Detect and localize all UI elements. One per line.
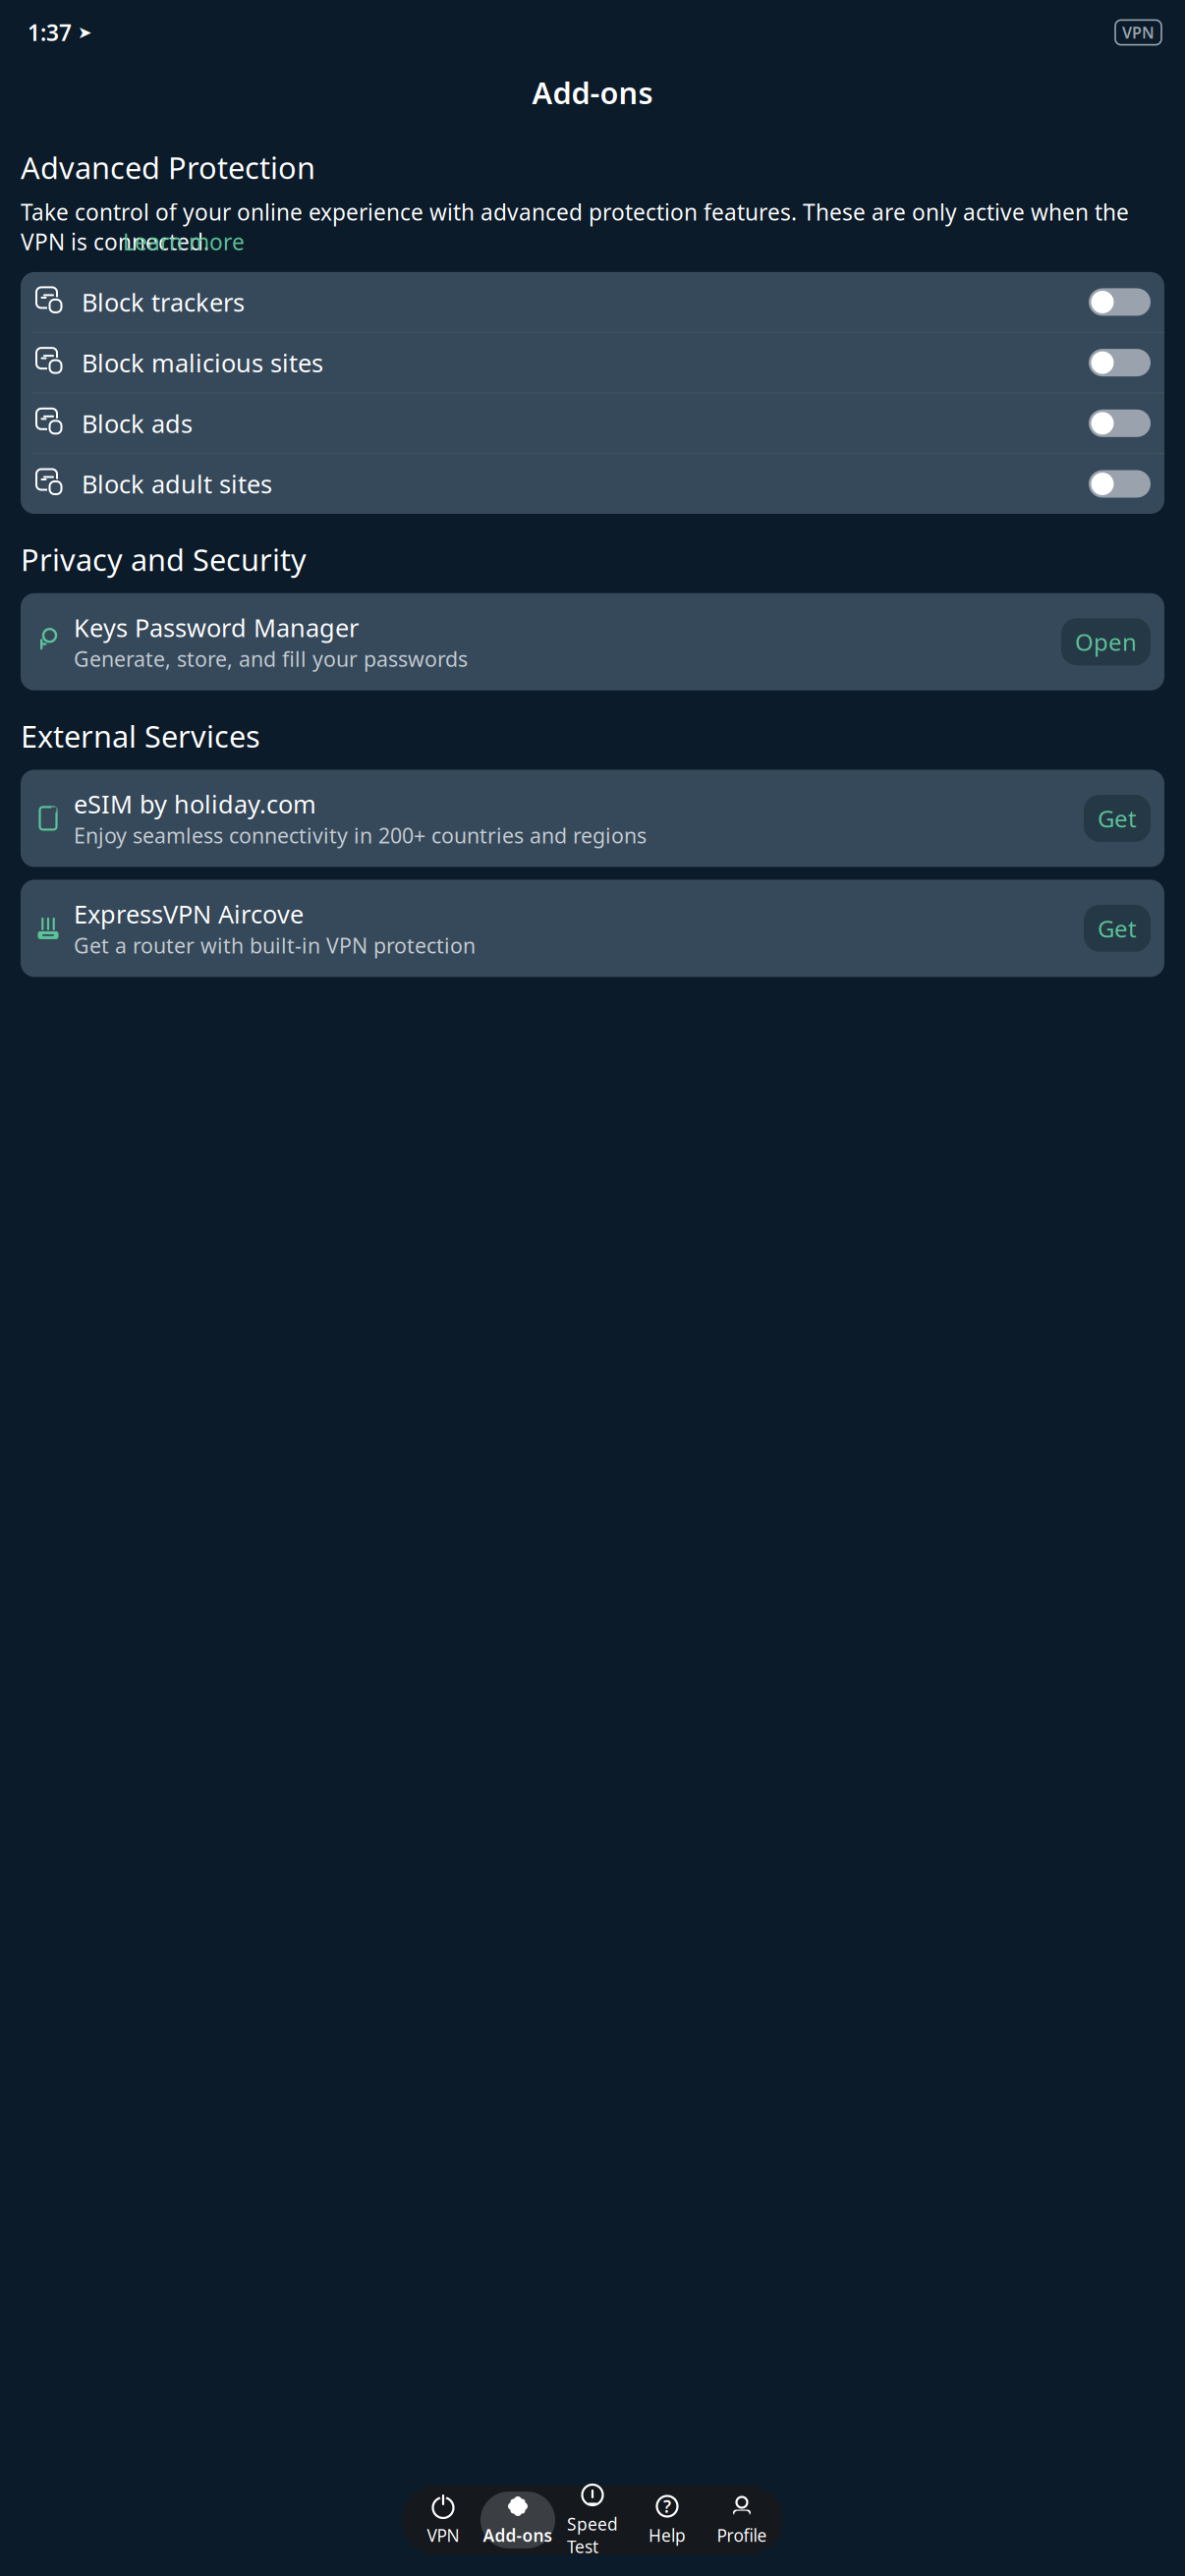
staticText: Speed Test: [567, 2513, 618, 2558]
button[interactable]: Block ads: [21, 393, 1164, 453]
button[interactable]: ExpressVPN Aircove: [21, 880, 1164, 977]
staticText: Generate, store, and fill your passwords: [74, 645, 468, 673]
staticText: Open: [1075, 626, 1137, 657]
staticText: Get: [1098, 913, 1137, 944]
staticText: Privacy and Security: [21, 539, 307, 579]
staticText: Block malicious sites: [82, 346, 323, 379]
staticText: VPN: [427, 2524, 459, 2547]
staticText: Learn more: [123, 227, 245, 256]
button[interactable]: Keys Password Manager: [21, 593, 1164, 690]
staticText: eSIM by holiday.com: [74, 787, 316, 820]
staticText: Block trackers: [82, 286, 245, 319]
staticText: Block adult sites: [82, 467, 272, 500]
button[interactable]: ?: [630, 2492, 705, 2548]
staticText: Help: [649, 2524, 686, 2547]
staticText: Get: [1098, 803, 1137, 834]
staticText: VPN: [1122, 22, 1155, 43]
staticText: Take control of your online experience w…: [21, 197, 1129, 256]
staticText: Keys Password Manager: [74, 611, 359, 644]
staticText: Profile: [717, 2524, 767, 2547]
button[interactable]: Block adult sites: [21, 454, 1164, 514]
staticText: ➤: [78, 23, 92, 42]
button[interactable]: Block malicious sites: [21, 333, 1164, 393]
staticText: 1:37: [28, 18, 72, 47]
staticText: Enjoy seamless connectivity in 200+ coun…: [74, 821, 647, 849]
button[interactable]: Block trackers: [21, 272, 1164, 332]
button[interactable]: Speed Test: [555, 2492, 630, 2548]
staticText: Add-ons: [532, 72, 653, 112]
staticText: Get a router with built-in VPN protectio…: [74, 931, 476, 959]
staticText: ExpressVPN Aircove: [74, 897, 304, 930]
staticText: Advanced Protection: [21, 147, 315, 187]
staticText: Block ads: [82, 407, 193, 440]
button[interactable]: VPN: [406, 2492, 480, 2548]
button[interactable]: Profile: [705, 2492, 779, 2548]
staticText: External Services: [21, 716, 260, 756]
staticText: ?: [663, 2495, 671, 2518]
staticText: Add-ons: [483, 2524, 553, 2547]
button[interactable]: eSIM by holiday.com: [21, 770, 1164, 867]
button[interactable]: Add-ons: [480, 2492, 555, 2548]
